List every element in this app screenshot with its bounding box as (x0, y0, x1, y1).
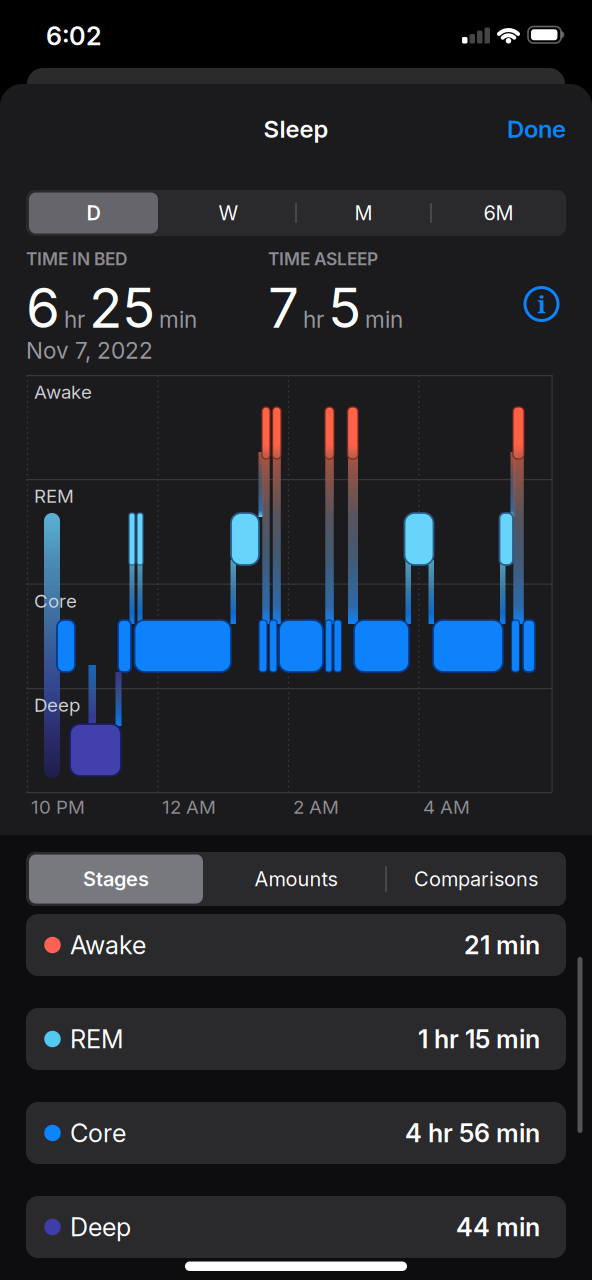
staticText: REM (34, 485, 74, 507)
staticText: i (537, 288, 545, 320)
staticText: Stages (83, 867, 149, 891)
staticText: M (354, 201, 372, 225)
staticText: 2 AM (293, 796, 339, 818)
staticText: min (159, 306, 197, 333)
staticText: 12 AM (162, 796, 216, 818)
staticText: 4 hr 56 min (405, 1118, 540, 1148)
staticText: 1 hr 15 min (418, 1024, 540, 1054)
staticText: Done (507, 115, 566, 143)
staticText: Deep (70, 1212, 131, 1242)
staticText: 25 (89, 275, 155, 340)
staticText: Sleep (263, 115, 328, 143)
staticText: 6:02 (46, 21, 102, 51)
staticText: 10 PM (31, 796, 85, 818)
staticText: W (218, 201, 238, 225)
staticText: 21 min (464, 930, 540, 960)
staticText: Deep (34, 694, 80, 716)
staticText: TIME IN BED (26, 249, 128, 269)
staticText: Nov 7, 2022 (26, 337, 153, 364)
staticText: min (365, 306, 403, 333)
staticText: REM (70, 1024, 124, 1054)
staticText: Amounts (254, 867, 337, 891)
staticText: 6M (483, 201, 513, 225)
staticText: hr (303, 306, 324, 333)
staticText: Comparisons (414, 867, 538, 891)
staticText: 4 AM (423, 796, 470, 818)
staticText: 7 (268, 275, 299, 340)
staticText: hr (64, 306, 85, 333)
staticText: 6 (26, 275, 60, 340)
staticText: Core (34, 590, 77, 612)
staticText: 5 (328, 275, 361, 340)
staticText: Awake (34, 381, 92, 403)
staticText: TIME ASLEEP (268, 249, 378, 269)
staticText: 44 min (456, 1212, 540, 1242)
staticText: Awake (70, 930, 146, 960)
staticText: Core (70, 1118, 126, 1148)
staticText: D (86, 201, 100, 225)
